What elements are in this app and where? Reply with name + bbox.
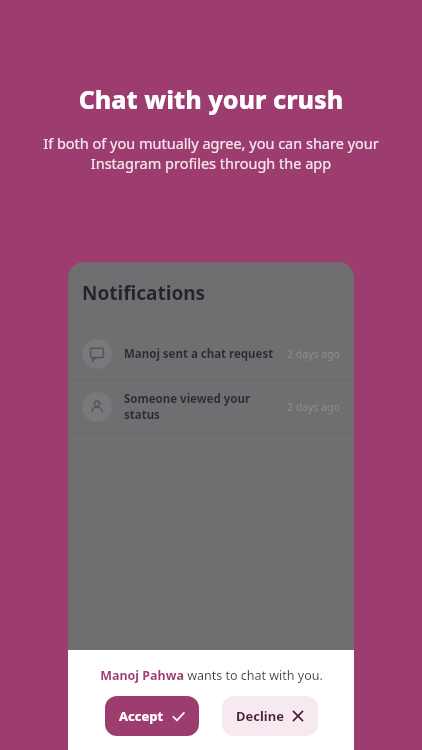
staticText: Notifications [82,280,206,306]
staticText: Decline [236,707,284,725]
staticText: Someone viewed your status [124,391,287,423]
button[interactable]: Manoj sent a chat request [68,328,354,380]
staticText: Accept [119,707,164,725]
staticText: 2 days ago [287,400,340,414]
staticText: If both of you mutually agree, you can s… [28,133,394,174]
staticText: Manoj Pahwa wants to chat with you. [100,667,323,684]
button[interactable]: Someone viewed your status [68,381,354,433]
staticText: 2 days ago [287,347,340,361]
staticText: Manoj sent a chat request [124,346,287,362]
staticText: Chat with your crush [28,82,394,116]
button[interactable]: Accept [105,696,199,736]
button[interactable]: Decline [222,696,318,736]
